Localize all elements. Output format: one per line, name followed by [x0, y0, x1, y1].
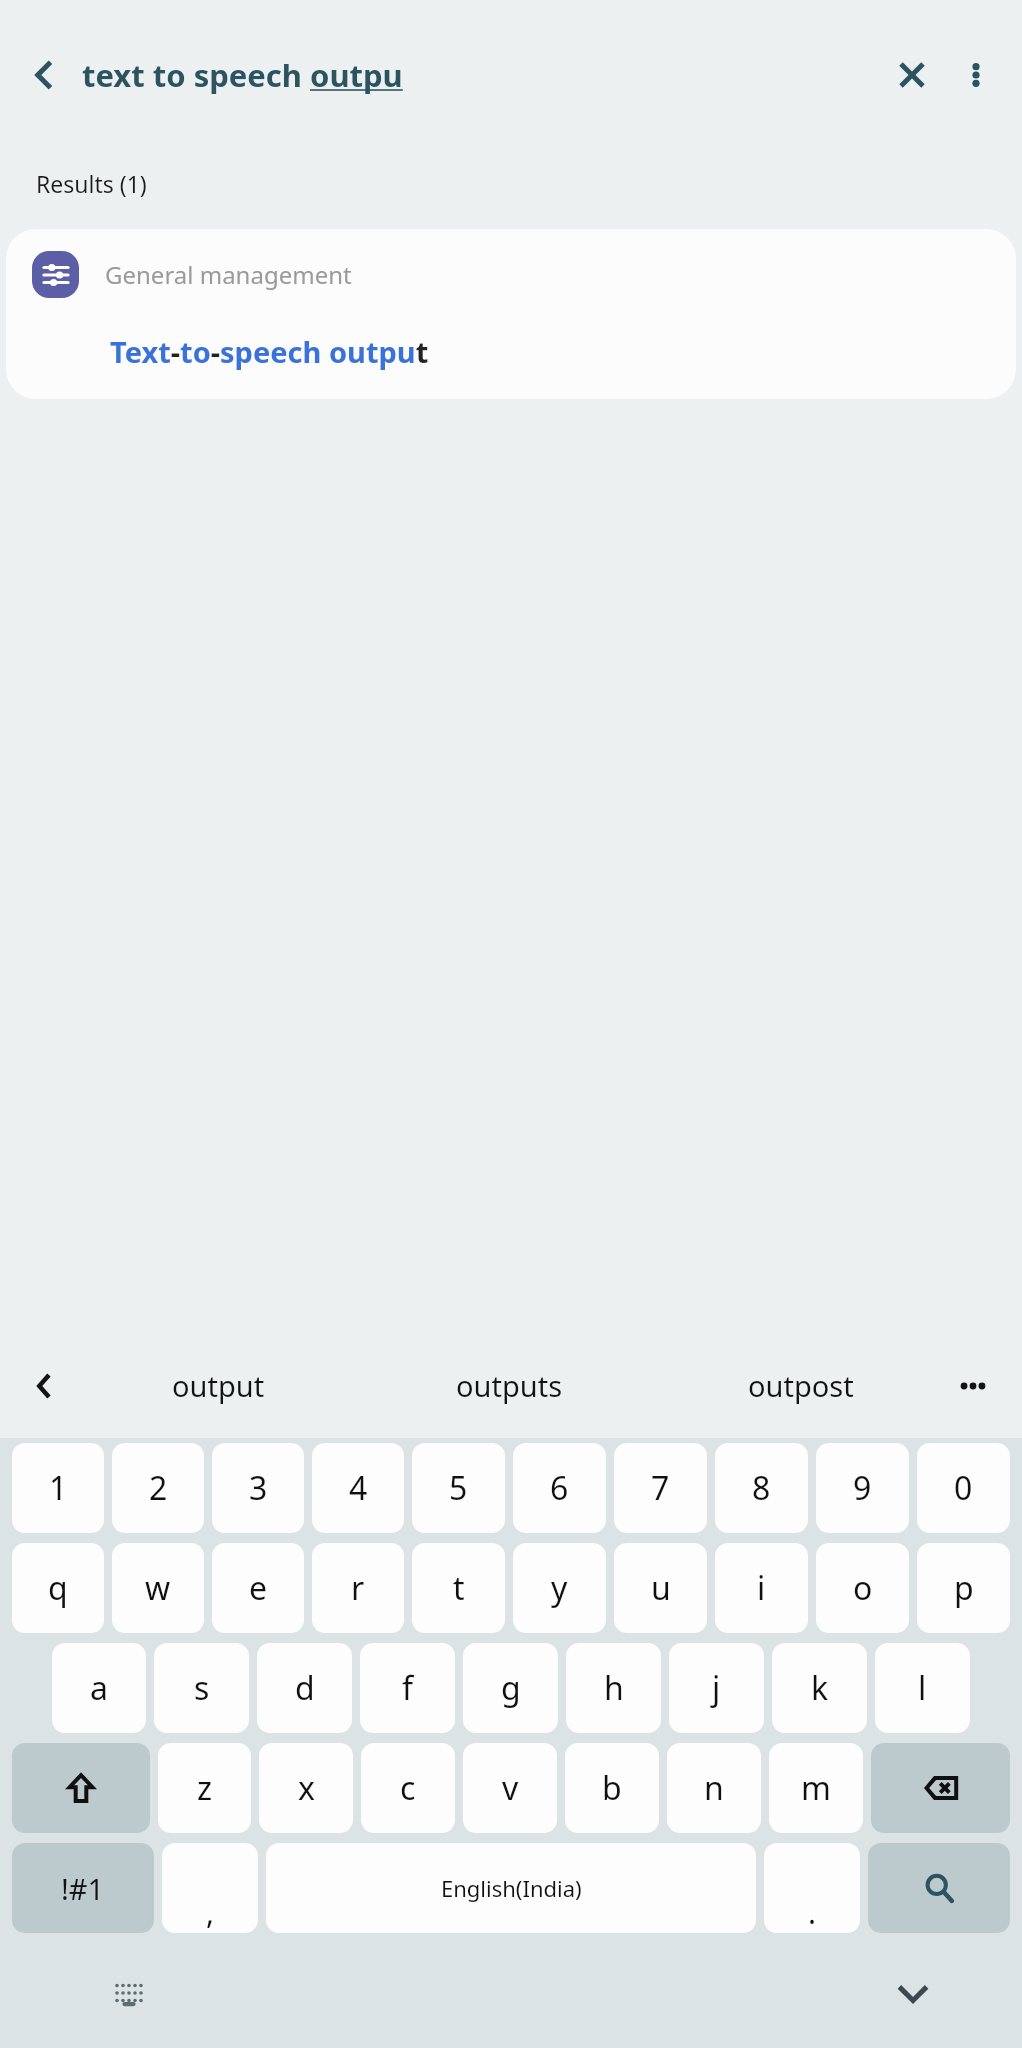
button[interactable]: English(India) [266, 1843, 756, 1933]
staticText: !#1 [61, 1869, 105, 1908]
staticText: s [194, 1666, 210, 1710]
staticText: n [704, 1766, 724, 1810]
button[interactable]: Back [16, 47, 72, 103]
button[interactable]: x [259, 1743, 353, 1833]
button[interactable]: outputs [364, 1333, 655, 1438]
staticText: Results (1) [36, 168, 147, 199]
button[interactable]: Clear [880, 43, 944, 107]
staticText: 3 [249, 1466, 268, 1510]
button[interactable]: More suggestions [946, 1359, 1000, 1413]
button[interactable]: More options [944, 43, 1008, 107]
staticText: m [801, 1766, 831, 1810]
button[interactable]: text to speech outpu [82, 54, 880, 96]
staticText: , [206, 1892, 215, 1933]
staticText: f [402, 1666, 414, 1710]
button[interactable]: Search [868, 1843, 1010, 1933]
staticText: 5 [449, 1466, 468, 1510]
staticText: outpost [748, 1366, 854, 1405]
staticText: 0 [954, 1466, 973, 1510]
staticText: 8 [752, 1466, 771, 1510]
button[interactable]: v [463, 1743, 557, 1833]
button[interactable]: 8 [715, 1443, 808, 1533]
staticText: 1 [49, 1466, 68, 1510]
button[interactable]: y [513, 1543, 606, 1633]
button[interactable]: s [154, 1643, 249, 1733]
button[interactable]: p [917, 1543, 1010, 1633]
button[interactable]: 7 [614, 1443, 707, 1533]
staticText: 9 [853, 1466, 872, 1510]
staticText: outputs [456, 1366, 563, 1405]
staticText: e [249, 1566, 268, 1610]
button[interactable]: 9 [816, 1443, 909, 1533]
staticText: a [90, 1666, 108, 1710]
staticText: p [954, 1566, 974, 1610]
button[interactable]: i [715, 1543, 808, 1633]
staticText: 2 [149, 1466, 168, 1510]
button[interactable]: c [361, 1743, 455, 1833]
staticText: w [145, 1566, 171, 1610]
button[interactable]: 2 [112, 1443, 204, 1533]
button[interactable]: 5 [412, 1443, 505, 1533]
button[interactable]: e [212, 1543, 304, 1633]
button[interactable]: b [565, 1743, 659, 1833]
staticText: q [48, 1566, 68, 1610]
button[interactable]: Hide keyboard [884, 1964, 942, 2022]
button[interactable]: 1 [12, 1443, 104, 1533]
button[interactable]: n [667, 1743, 761, 1833]
button[interactable]: 0 [917, 1443, 1010, 1533]
staticText: o [853, 1566, 873, 1610]
button[interactable]: General management [6, 229, 1016, 399]
button[interactable]: l [875, 1643, 970, 1733]
button[interactable]: m [769, 1743, 863, 1833]
staticText: u [651, 1566, 671, 1610]
staticText: text to speech outpu [82, 54, 403, 96]
button[interactable]: u [614, 1543, 707, 1633]
button[interactable]: k [772, 1643, 867, 1733]
staticText: l [918, 1666, 927, 1710]
staticText: d [295, 1666, 315, 1710]
button[interactable]: w [112, 1543, 204, 1633]
staticText: output [172, 1366, 265, 1405]
staticText: g [501, 1666, 521, 1710]
button[interactable]: t [412, 1543, 505, 1633]
staticText: r [351, 1566, 365, 1610]
staticText: c [400, 1766, 416, 1810]
button[interactable]: !#1 [12, 1843, 154, 1933]
button[interactable]: d [257, 1643, 352, 1733]
staticText: y [551, 1566, 568, 1610]
staticText: 4 [349, 1466, 368, 1510]
button[interactable]: o [816, 1543, 909, 1633]
button[interactable]: Shift [12, 1743, 150, 1833]
button[interactable]: . [764, 1843, 860, 1933]
button[interactable]: a [52, 1643, 146, 1733]
button[interactable]: q [12, 1543, 104, 1633]
staticText: z [197, 1766, 213, 1810]
button[interactable]: Keyboard layout [100, 1964, 158, 2022]
staticText: v [502, 1766, 519, 1810]
staticText: Text-to-speech output [110, 332, 429, 371]
staticText: t [453, 1566, 465, 1610]
button[interactable]: 6 [513, 1443, 606, 1533]
staticText: h [604, 1666, 624, 1710]
button[interactable]: 3 [212, 1443, 304, 1533]
button[interactable]: output [72, 1333, 364, 1438]
button[interactable]: g [463, 1643, 558, 1733]
staticText: i [757, 1566, 766, 1610]
staticText: 6 [550, 1466, 569, 1510]
button[interactable]: 4 [312, 1443, 404, 1533]
staticText: . [808, 1892, 817, 1933]
button[interactable]: f [360, 1643, 455, 1733]
button[interactable]: Backspace [871, 1743, 1010, 1833]
button[interactable]: j [669, 1643, 764, 1733]
staticText: 7 [651, 1466, 670, 1510]
button[interactable]: h [566, 1643, 661, 1733]
staticText: j [712, 1666, 721, 1710]
button[interactable]: Previous suggestions [18, 1359, 72, 1413]
button[interactable]: z [158, 1743, 251, 1833]
staticText: x [298, 1766, 315, 1810]
staticText: General management [105, 258, 352, 291]
button[interactable]: , [162, 1843, 258, 1933]
button[interactable]: r [312, 1543, 404, 1633]
button[interactable]: outpost [655, 1333, 946, 1438]
staticText: English(India) [441, 1873, 582, 1903]
